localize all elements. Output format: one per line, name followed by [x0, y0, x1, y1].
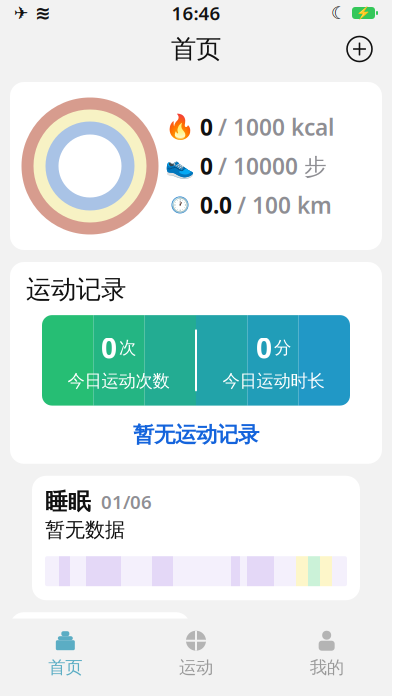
button[interactable]: 首页 [0, 627, 131, 680]
staticText: / 1000 kcal [218, 112, 334, 142]
staticText: 🕐 [171, 197, 189, 213]
staticText: 0 [200, 112, 213, 142]
staticText: 0 [101, 329, 117, 366]
staticText: 0 [256, 329, 272, 366]
staticText: 运动记录 [26, 274, 126, 305]
staticText: / 10000 步 [218, 151, 327, 181]
button[interactable]: 我的 [261, 627, 392, 680]
staticText: bpm [71, 665, 116, 691]
staticText: 暂无数据 [45, 518, 125, 542]
staticText: 今日运动时长 [222, 370, 324, 392]
staticText: 今日运动次数 [67, 370, 169, 392]
staticText: 心率 [23, 624, 69, 652]
staticText: 次 [119, 337, 136, 358]
staticText: 暂无运动记录 [133, 422, 259, 448]
staticText: 首页 [48, 657, 82, 678]
staticText: 16:46 [171, 1, 220, 25]
staticText: ≋ [35, 2, 51, 24]
button[interactable]: 暂无运动记录 [24, 416, 368, 454]
staticText: 77 [23, 654, 65, 696]
staticText: 01/06 [101, 489, 152, 514]
staticText: 0 [200, 151, 213, 181]
staticText: 👟 [165, 152, 195, 180]
staticText: 运动 [179, 657, 213, 678]
staticText: 🔥 [165, 113, 195, 141]
staticText: 首页 [171, 33, 221, 64]
staticText: ⚡ [356, 6, 371, 20]
staticText: ✈ [14, 3, 29, 23]
staticText: ☾ [331, 3, 347, 23]
staticText: 我的 [310, 657, 344, 678]
staticText: 睡眠 [45, 488, 91, 516]
button[interactable]: 运动 [131, 627, 261, 680]
button[interactable]: 添加 [339, 28, 380, 69]
staticText: 分 [274, 337, 291, 358]
staticText: 0.0 [200, 190, 232, 220]
staticText: / 100 km [237, 190, 332, 220]
